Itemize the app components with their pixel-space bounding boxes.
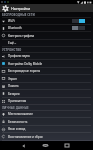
- button[interactable]: Back: [12, 141, 34, 150]
- button[interactable]: Профили звука: [0, 53, 93, 60]
- button[interactable]: Настройки Dolby Mobile: [0, 60, 93, 68]
- staticText: Настройки Dolby Mobile: [8, 62, 43, 66]
- button[interactable]: Контроль трафика: [0, 32, 93, 40]
- staticText: ЛИЧНЫЕ ДАННЫЕ: [2, 106, 29, 110]
- button[interactable]: Приложения: [0, 98, 93, 105]
- button[interactable]: Память: [0, 83, 93, 90]
- staticText: Экран: [8, 77, 17, 81]
- staticText: Беспроводные экраны: [8, 69, 41, 73]
- staticText: Местоположение: [8, 112, 33, 116]
- button[interactable]: Язык и ввод: [0, 126, 93, 133]
- staticText: Память: [8, 84, 19, 88]
- staticText: Восстановление и сброс: [8, 135, 43, 139]
- button[interactable]: Безопасность: [0, 118, 93, 126]
- button[interactable]: Беспроводные экраны: [0, 68, 93, 75]
- staticText: Bluetooth: [8, 26, 22, 30]
- button[interactable]: Ещё...: [0, 40, 93, 47]
- button[interactable]: Батарея: [0, 90, 93, 98]
- staticText: Профили звука: [8, 54, 30, 58]
- staticText: БЕСПРОВОДНЫЕ СЕТИ: [2, 13, 35, 17]
- staticText: Контроль трафика: [8, 34, 35, 38]
- button[interactable]: Wi-Fi: [0, 18, 93, 25]
- staticText: Ещё...: [8, 41, 17, 45]
- button[interactable]: Recent apps: [56, 141, 78, 150]
- staticText: Приложения: [8, 99, 27, 103]
- button[interactable]: Экран: [0, 75, 93, 83]
- button[interactable]: Местоположение: [0, 111, 93, 118]
- button[interactable]: Восстановление и сброс: [0, 133, 93, 141]
- button[interactable]: Bluetooth: [0, 25, 93, 32]
- staticText: Настройки: [11, 6, 31, 11]
- button[interactable]: Home: [34, 141, 56, 150]
- staticText: УСТРОЙСТВО: [2, 48, 22, 52]
- staticText: Батарея: [8, 92, 20, 96]
- staticText: Язык и ввод: [8, 127, 26, 131]
- staticText: Безопасность: [8, 120, 28, 124]
- staticText: Wi-Fi: [8, 19, 15, 23]
